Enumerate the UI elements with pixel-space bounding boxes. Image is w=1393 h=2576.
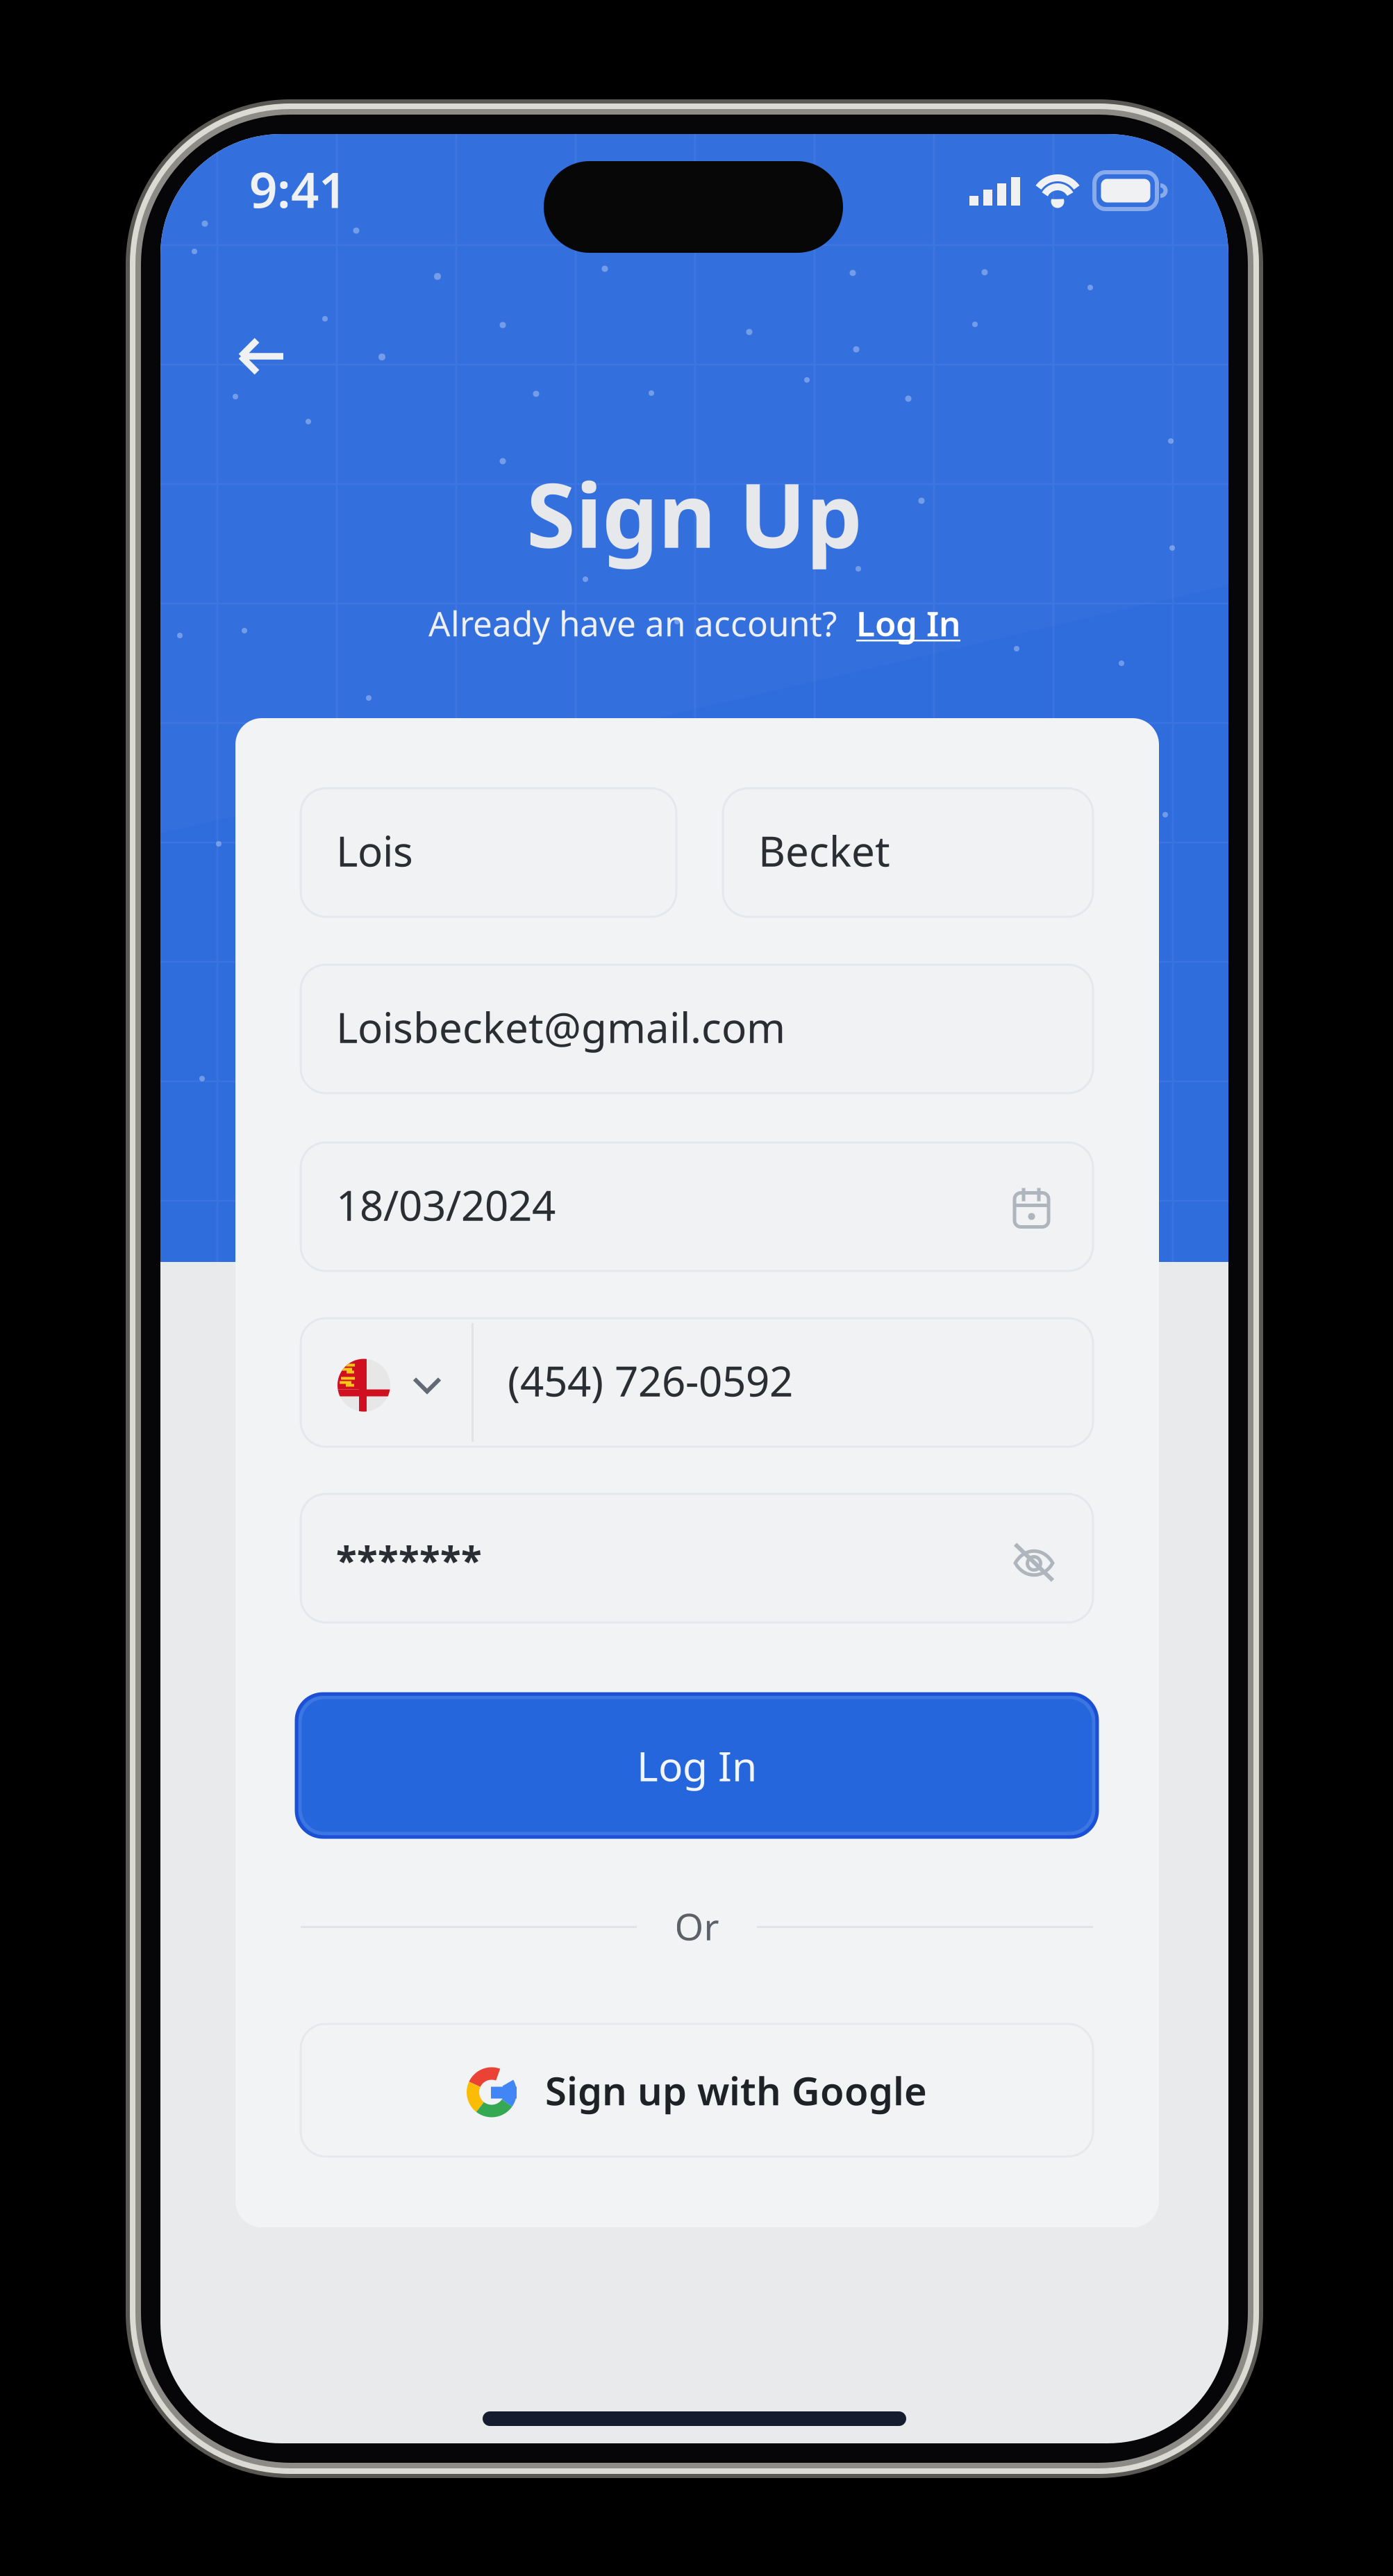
staticText: Sign up with Google bbox=[545, 2064, 927, 2116]
button[interactable]: Log In bbox=[297, 1694, 1097, 1837]
button[interactable]: Back bbox=[209, 315, 306, 398]
staticText: Already have an account? bbox=[428, 600, 837, 646]
button[interactable]: ******* bbox=[301, 1494, 1093, 1622]
button[interactable]: Becket bbox=[723, 788, 1093, 917]
button[interactable]: Loisbecket@gmail.com bbox=[301, 965, 1093, 1093]
button[interactable]: Sign up with Google bbox=[301, 2024, 1093, 2157]
button[interactable]: 18/03/2024 bbox=[301, 1142, 1093, 1271]
button[interactable]: (454) 726-0592 bbox=[472, 1318, 1093, 1447]
staticText: Loisbecket@gmail.com bbox=[336, 999, 785, 1055]
staticText: 9:41 bbox=[249, 156, 347, 221]
staticText: Sign Up bbox=[526, 454, 862, 572]
staticText: (454) 726-0592 bbox=[508, 1353, 793, 1408]
staticText: Becket bbox=[758, 823, 890, 878]
button[interactable]: Country code bbox=[301, 1318, 472, 1447]
button[interactable]: Log In bbox=[856, 600, 960, 646]
staticText: 18/03/2024 bbox=[336, 1177, 556, 1232]
staticText: Or bbox=[675, 1901, 719, 1951]
staticText: Log In bbox=[637, 1738, 757, 1793]
staticText: Log In bbox=[856, 600, 960, 646]
staticText: Lois bbox=[336, 823, 413, 878]
staticText: ******* bbox=[336, 1534, 482, 1585]
button[interactable]: Lois bbox=[301, 788, 676, 917]
